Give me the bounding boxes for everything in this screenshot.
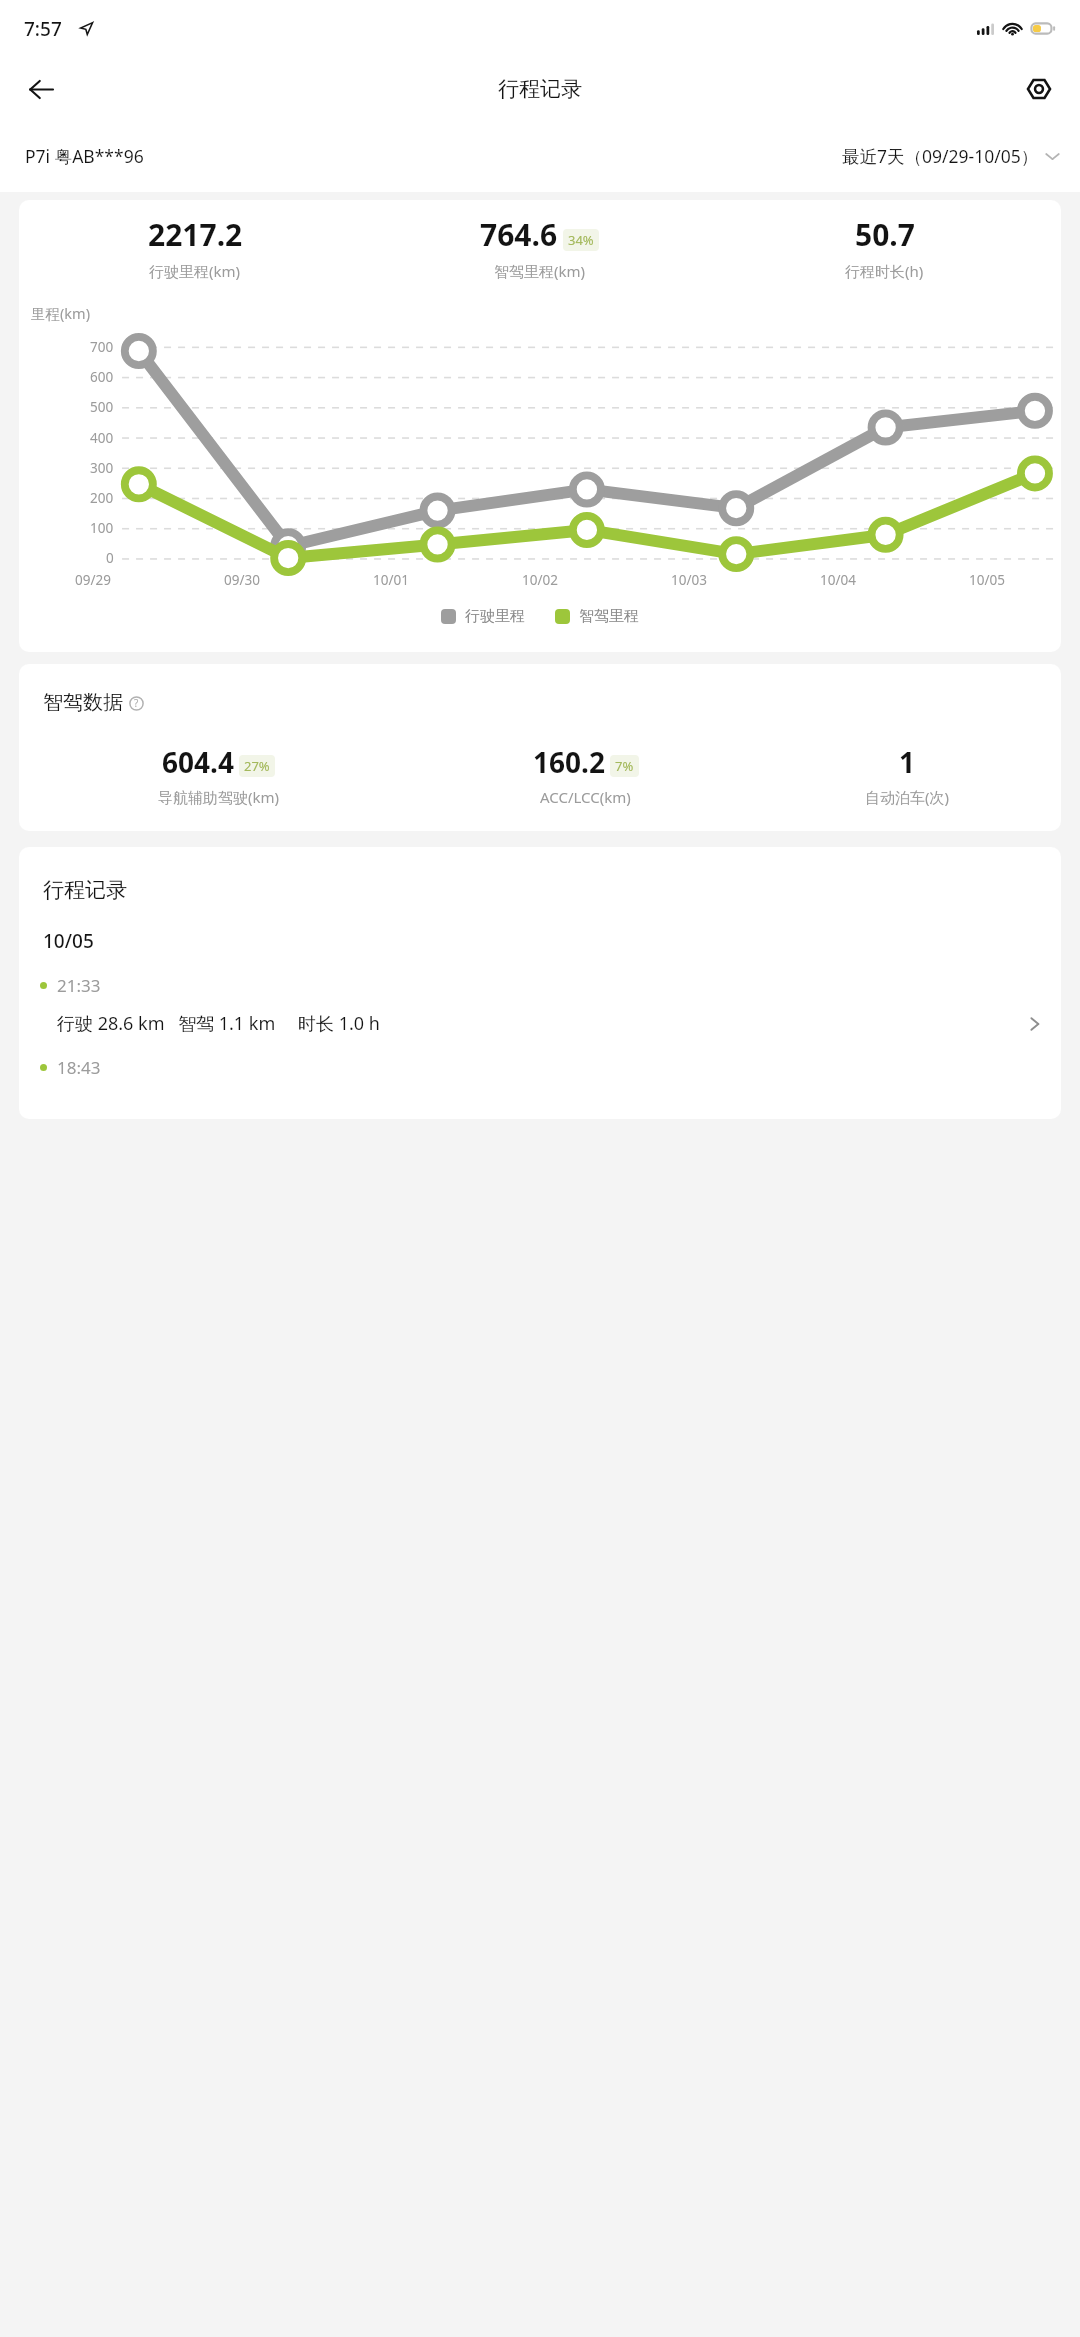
staticText: 18:43 <box>57 1056 101 1079</box>
staticText: ACC/LCC(km) <box>540 787 631 807</box>
staticText: 600 <box>90 368 114 386</box>
staticText: 时长 1.0 h <box>298 1011 380 1036</box>
staticText: 行程记录 <box>498 76 582 102</box>
staticText: 100 <box>90 519 114 537</box>
staticText: ? <box>134 696 139 710</box>
staticText: 604.4 <box>162 743 234 781</box>
staticText: 导航辅助驾驶(km) <box>158 787 280 807</box>
staticText: 1 <box>899 743 916 781</box>
staticText: 行驶 28.6 km <box>57 1011 165 1036</box>
staticText: 10/05 <box>43 928 94 954</box>
staticText: 764.6 <box>480 214 558 255</box>
staticText: 行程时长(h) <box>845 261 924 281</box>
staticText: 10/01 <box>373 571 409 589</box>
staticText: 500 <box>90 398 114 416</box>
staticText: 200 <box>90 489 114 507</box>
staticText: 09/29 <box>75 571 111 589</box>
staticText: 09/30 <box>224 571 260 589</box>
staticText: 50.7 <box>855 214 915 255</box>
staticText: 10/03 <box>671 571 707 589</box>
staticText: 最近7天（09/29-10/05） <box>842 144 1039 168</box>
staticText: 400 <box>90 429 114 447</box>
staticText: 34% <box>568 231 594 249</box>
button[interactable]: 最近7天（09/29-10/05） <box>842 144 1060 168</box>
staticText: 21:33 <box>57 974 101 997</box>
staticText: 10/05 <box>969 571 1005 589</box>
staticText: P7i 粤AB***96 <box>25 144 144 168</box>
staticText: 160.2 <box>533 743 605 781</box>
staticText: 行驶里程(km) <box>149 261 241 281</box>
button[interactable]: 21:33 <box>19 974 1061 1036</box>
button[interactable]: 智驾里程 <box>555 607 639 626</box>
staticText: 自动泊车(次) <box>865 787 950 807</box>
staticText: 行程记录 <box>43 877 127 903</box>
staticText: 27% <box>244 757 270 775</box>
button[interactable]: Back <box>16 64 66 114</box>
staticText: 7% <box>615 757 634 775</box>
staticText: 智驾里程 <box>579 607 639 626</box>
staticText: 智驾里程(km) <box>494 261 586 281</box>
staticText: 700 <box>90 338 114 356</box>
button[interactable]: Info <box>126 693 146 713</box>
staticText: 7:57 <box>24 16 62 42</box>
staticText: 2217.2 <box>148 214 243 255</box>
staticText: 0 <box>106 549 114 567</box>
staticText: 10/02 <box>522 571 558 589</box>
staticText: 智驾数据 <box>43 690 123 715</box>
staticText: 300 <box>90 459 114 477</box>
staticText: 行驶里程 <box>465 607 525 626</box>
button[interactable]: 行驶里程 <box>441 607 525 626</box>
staticText: 里程(km) <box>31 303 91 323</box>
staticText: 10/04 <box>820 571 856 589</box>
staticText: 智驾 1.1 km <box>178 1011 276 1036</box>
button[interactable]: Settings <box>1014 64 1064 114</box>
